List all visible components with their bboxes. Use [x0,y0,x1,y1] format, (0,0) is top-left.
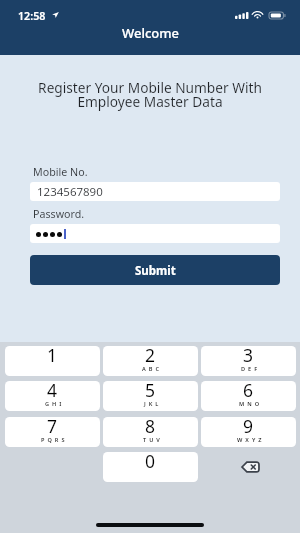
staticText: MNO [239,400,263,408]
button[interactable]: 3 [201,346,296,376]
staticText: 12:58 [18,9,46,24]
staticText: TUV [143,436,163,444]
staticText: WXYZ [237,436,265,444]
staticText: 7 [47,417,58,438]
button[interactable]: Delete [201,452,296,482]
staticText: 0 [145,452,156,473]
staticText: 4 [47,381,58,402]
button[interactable]: 0 [103,452,198,482]
button[interactable]: 6 [201,381,296,411]
staticText: Register Your Mobile Number With Employe… [8,78,292,111]
staticText: ABC [142,365,163,373]
button[interactable]: Submit [30,255,280,285]
button[interactable]: 1 [5,346,100,376]
staticText: 5 [145,381,156,402]
staticText: 1 [47,346,58,367]
button[interactable]: 1234567890 [30,182,280,201]
button[interactable]: 5 [103,381,198,411]
staticText: 3 [243,346,254,367]
staticText: 9 [243,417,254,438]
staticText: 2 [145,346,156,367]
button[interactable]: 8 [103,417,198,447]
staticText: Password. [33,207,85,222]
button[interactable] [30,224,280,243]
button[interactable]: 4 [5,381,100,411]
staticText: 8 [145,417,156,438]
button[interactable]: 2 [103,346,198,376]
staticText: PQRS [41,436,68,444]
button[interactable]: 9 [201,417,296,447]
staticText: 1234567890 [37,184,103,200]
button[interactable]: 7 [5,417,100,447]
staticText: JKL [144,400,162,408]
staticText: Submit [135,263,176,279]
staticText: Mobile No. [33,165,88,180]
staticText: 6 [243,381,254,402]
staticText: Welcome [122,24,180,42]
staticText: GHI [45,400,65,408]
staticText: DEF [241,365,261,373]
